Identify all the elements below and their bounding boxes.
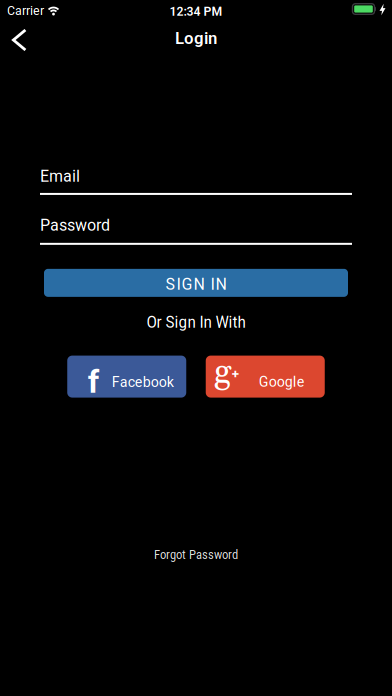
button[interactable]: SIGN IN xyxy=(44,269,348,297)
staticText: Carrier xyxy=(7,3,44,18)
staticText: Email xyxy=(40,166,80,186)
staticText: Facebook xyxy=(112,373,174,391)
staticText: f xyxy=(88,363,99,400)
staticText: 12:34 PM xyxy=(169,4,222,19)
staticText: Forgot Password xyxy=(154,548,238,562)
button[interactable]: Forgot Password xyxy=(154,548,238,562)
staticText: Login xyxy=(175,28,217,48)
button[interactable]: g xyxy=(206,356,325,398)
staticText: g xyxy=(214,351,232,395)
staticText: Password xyxy=(40,215,110,235)
staticText: Google xyxy=(259,373,305,390)
button[interactable]: Back xyxy=(0,20,34,60)
staticText: Or Sign In With xyxy=(146,313,245,332)
button[interactable]: f xyxy=(67,356,186,398)
staticText: SIGN IN xyxy=(165,274,226,294)
staticText: + xyxy=(232,366,239,382)
